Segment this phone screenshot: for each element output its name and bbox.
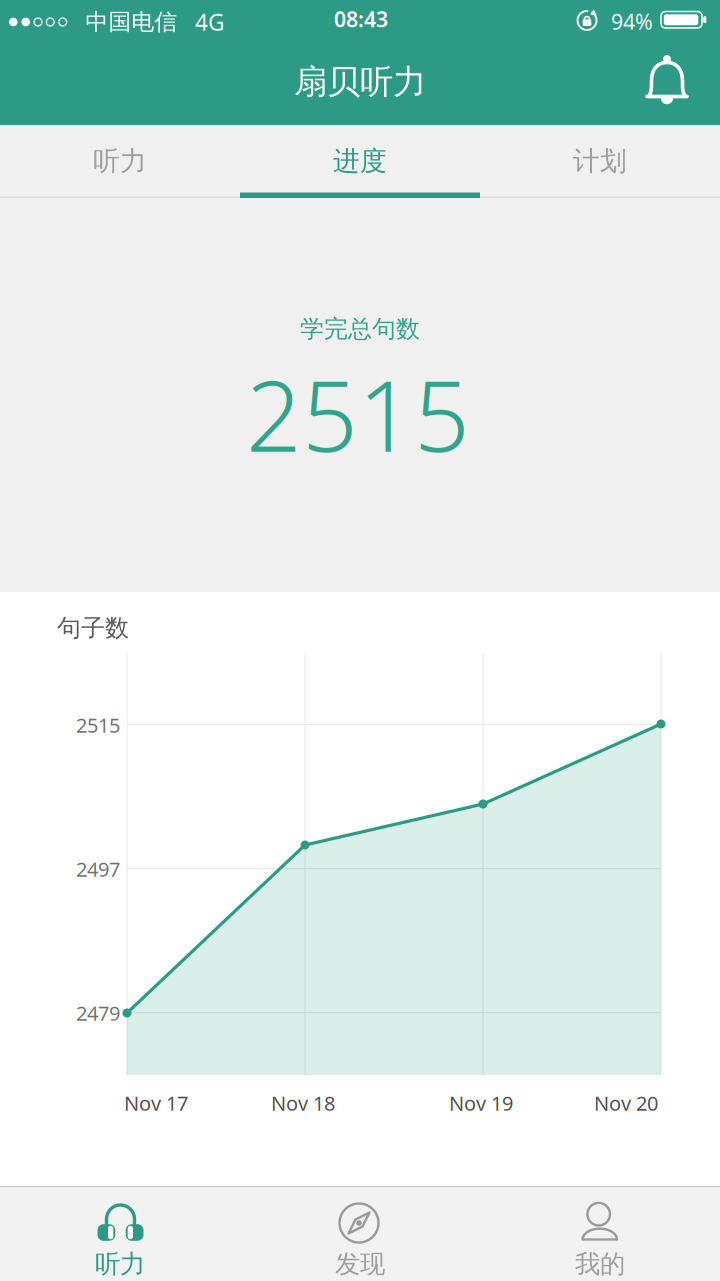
staticText: 听力 xyxy=(95,1248,145,1279)
button[interactable]: 我的 xyxy=(480,1186,720,1281)
staticText: Nov 20 xyxy=(594,1090,658,1116)
staticText: 句子数 xyxy=(57,613,129,643)
staticText: 08:43 xyxy=(334,5,388,33)
staticText: 94% xyxy=(611,7,653,36)
staticText: 学完总句数 xyxy=(300,314,420,344)
button[interactable]: 计划 xyxy=(480,125,720,197)
button[interactable]: 听力 xyxy=(0,1186,240,1281)
button[interactable]: 进度 xyxy=(240,125,480,197)
staticText: Nov 18 xyxy=(271,1090,335,1116)
staticText: 2479 xyxy=(76,1000,120,1026)
button[interactable]: 通知 xyxy=(637,47,697,111)
staticText: 进度 xyxy=(333,145,387,177)
staticText: Nov 17 xyxy=(124,1090,188,1116)
staticText: 听力 xyxy=(93,145,147,177)
staticText: 发现 xyxy=(335,1248,385,1279)
staticText: 计划 xyxy=(573,145,627,177)
staticText: 扇贝听力 xyxy=(294,61,426,102)
staticText: 2515 xyxy=(246,349,470,479)
button[interactable]: 听力 xyxy=(0,125,240,197)
staticText: Nov 19 xyxy=(449,1090,513,1116)
staticText: 我的 xyxy=(575,1248,625,1279)
staticText: 2515 xyxy=(76,712,120,738)
staticText: 中国电信 xyxy=(85,8,177,36)
button[interactable]: 发现 xyxy=(240,1186,480,1281)
staticText: 4G xyxy=(195,7,225,37)
staticText: 2497 xyxy=(76,856,120,882)
